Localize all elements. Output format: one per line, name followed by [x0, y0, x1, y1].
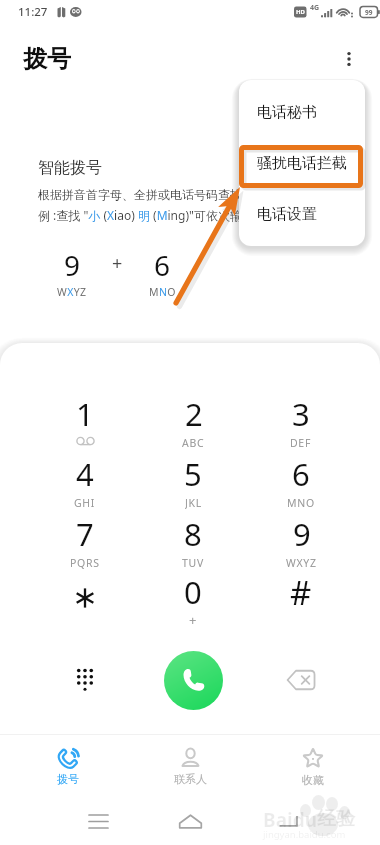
staticText: jingyan.baidu.com	[263, 828, 346, 841]
staticText: 2	[185, 393, 203, 435]
button[interactable]: 6	[271, 453, 331, 509]
button[interactable]: Call	[164, 651, 223, 710]
button[interactable]: Home	[166, 797, 214, 845]
button[interactable]	[55, 571, 115, 627]
button[interactable]: 收藏	[258, 734, 368, 787]
button[interactable]: Back	[264, 797, 312, 845]
staticText: 11:27	[18, 4, 48, 20]
staticText: 根据拼音首字母、全拼或电话号码查找	[38, 187, 242, 202]
button[interactable]: 拨号	[13, 734, 123, 786]
staticText: MNO	[149, 285, 176, 299]
button[interactable]: 电话秘书	[239, 87, 365, 138]
staticText: GHI	[74, 496, 96, 509]
button[interactable]: Recents	[74, 797, 122, 845]
button[interactable]: 骚扰电话拦截	[239, 138, 365, 189]
button[interactable]: 7	[55, 513, 115, 569]
staticText: 4	[76, 453, 94, 495]
button[interactable]: 8	[163, 513, 223, 569]
button[interactable]: 电话设置	[239, 189, 365, 240]
button[interactable]: 2	[163, 393, 223, 449]
button[interactable]: 1	[55, 393, 115, 449]
button[interactable]: 0	[163, 571, 223, 627]
staticText: 经验	[317, 807, 355, 831]
staticText: WXYZ	[57, 285, 87, 299]
staticText: MNO	[287, 496, 315, 509]
button[interactable]: 联系人	[135, 734, 245, 786]
button[interactable]: #	[271, 571, 331, 627]
staticText: 拨号	[23, 44, 71, 74]
staticText: 8	[184, 513, 202, 555]
staticText: TUV	[182, 556, 204, 569]
staticText: 电话秘书	[257, 103, 317, 122]
staticText: ABC	[182, 436, 205, 449]
staticText: +	[112, 251, 123, 276]
staticText: 6	[292, 453, 310, 495]
staticText: +	[189, 611, 197, 625]
staticText: 9	[64, 246, 81, 284]
staticText: PQRS	[70, 556, 100, 569]
staticText: 智能拨号	[38, 158, 102, 178]
staticText: 收藏	[302, 773, 324, 787]
button[interactable]: 3	[271, 393, 331, 449]
staticText: 1	[76, 393, 94, 435]
button[interactable]: More options	[330, 40, 368, 78]
staticText: 0	[184, 571, 202, 613]
staticText: JKL	[185, 496, 202, 509]
staticText: #	[290, 570, 312, 615]
staticText: 99	[365, 8, 373, 17]
staticText: 拨号	[57, 772, 79, 786]
staticText: DEF	[290, 436, 312, 449]
staticText: 例 :查找 "小 (Xiao) 明 (Ming)"可依次输入	[38, 207, 254, 223]
staticText: 4G	[310, 3, 320, 13]
button[interactable]: Keypad	[55, 650, 115, 710]
staticText: Baidu	[263, 807, 318, 833]
staticText: 联系人	[174, 772, 207, 786]
staticText: HD	[296, 8, 305, 16]
button[interactable]: 4	[55, 453, 115, 509]
staticText: 3	[292, 393, 310, 435]
staticText: 电话设置	[257, 205, 317, 224]
staticText: 5	[184, 453, 202, 495]
button[interactable]: 5	[163, 453, 223, 509]
staticText: 6	[154, 246, 171, 284]
staticText: 骚扰电话拦截	[257, 154, 347, 173]
staticText: 7	[76, 513, 94, 555]
button[interactable]: Backspace	[271, 650, 331, 710]
staticText: 9	[293, 513, 311, 555]
button[interactable]: 9	[271, 513, 331, 569]
staticText: WXYZ	[286, 556, 317, 569]
